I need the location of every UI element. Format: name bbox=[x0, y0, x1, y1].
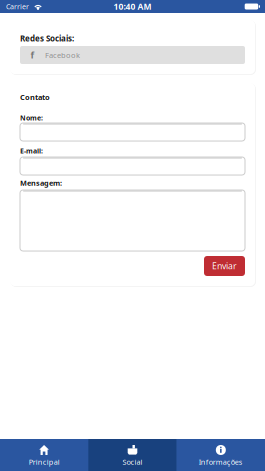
button[interactable]: Enviar bbox=[204, 256, 245, 276]
staticText: E-mail: bbox=[20, 146, 43, 155]
staticText: Mensagem: bbox=[20, 178, 62, 188]
staticText: f bbox=[30, 49, 34, 61]
staticText: Redes Sociais: bbox=[20, 33, 74, 44]
staticText: Carrier bbox=[6, 2, 29, 11]
staticText: Principal bbox=[29, 457, 60, 467]
button[interactable]: Informações bbox=[177, 439, 265, 471]
button[interactable]: Social bbox=[88, 439, 177, 471]
button[interactable]: f bbox=[20, 46, 245, 64]
button[interactable]: Principal bbox=[0, 439, 88, 471]
staticText: Contato bbox=[20, 92, 50, 102]
staticText: 10:40 AM bbox=[113, 1, 151, 12]
staticText: Enviar bbox=[212, 260, 237, 272]
staticText: Social bbox=[122, 457, 142, 467]
staticText: Nome: bbox=[20, 113, 43, 122]
staticText: Informações bbox=[199, 457, 243, 467]
staticText: Facebook bbox=[45, 50, 80, 60]
